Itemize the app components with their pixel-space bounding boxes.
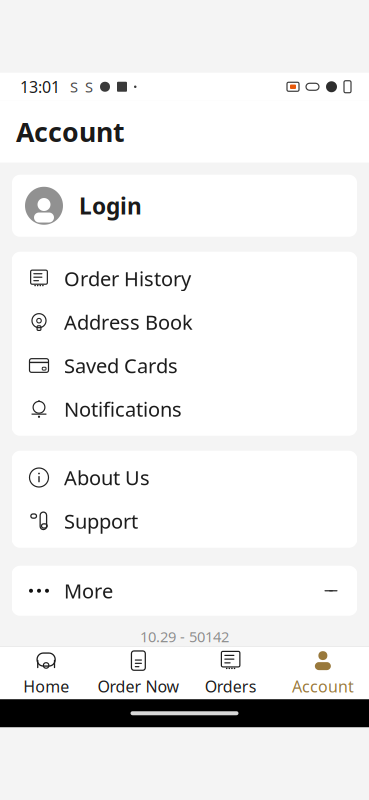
staticText: Support (64, 508, 138, 534)
staticText: Orders (205, 676, 257, 697)
staticText: S (70, 77, 78, 96)
button[interactable]: Order History (12, 257, 357, 300)
button[interactable]: Support (12, 499, 357, 543)
button[interactable]: Account (277, 647, 369, 699)
staticText: Order Now (97, 676, 179, 697)
staticText: Account (292, 676, 354, 697)
staticText: 13:01 (20, 76, 60, 97)
staticText: More (64, 577, 113, 604)
button[interactable]: Address Book (12, 300, 357, 344)
staticText: S (85, 77, 93, 96)
staticText: Saved Cards (64, 352, 178, 379)
staticText: Account (16, 114, 125, 149)
button[interactable]: Orders (184, 647, 277, 699)
button[interactable]: Notifications (12, 387, 357, 431)
staticText: 10.29 - 50142 (140, 627, 229, 646)
button[interactable]: Saved Cards (12, 344, 357, 387)
staticText: Address Book (64, 309, 193, 335)
button[interactable]: Order Now (92, 647, 184, 699)
button[interactable]: Login (12, 175, 357, 237)
staticText: Order History (64, 265, 191, 292)
staticText: Home (23, 676, 69, 697)
staticText: About Us (64, 464, 150, 491)
button[interactable]: About Us (12, 456, 357, 499)
staticText: Notifications (64, 396, 182, 422)
button[interactable]: Home (0, 647, 92, 699)
staticText: Login (79, 191, 142, 221)
button[interactable]: More (12, 569, 357, 612)
